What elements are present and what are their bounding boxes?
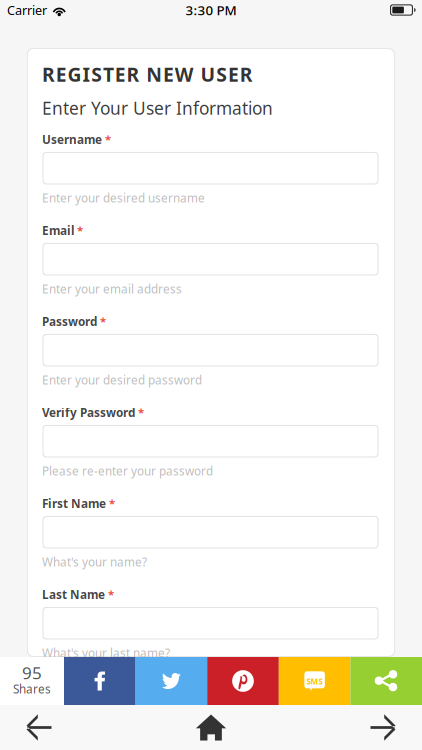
staticText: * bbox=[77, 222, 83, 238]
staticText: What's your name? bbox=[42, 554, 147, 570]
button[interactable]: More sharing options bbox=[350, 657, 422, 705]
staticText: Password bbox=[42, 313, 97, 329]
staticText: * bbox=[105, 131, 111, 147]
staticText: Verify Password bbox=[42, 404, 135, 420]
staticText: REGISTER NEW USER bbox=[42, 61, 253, 87]
button[interactable]: Forward bbox=[354, 705, 412, 750]
button[interactable]: Save to Pinterest bbox=[207, 657, 279, 705]
staticText: Last Name bbox=[42, 586, 105, 602]
staticText: * bbox=[100, 313, 106, 329]
staticText: Please re-enter your password bbox=[42, 463, 213, 479]
button[interactable]: Back bbox=[10, 705, 68, 750]
staticText: Enter your desired password bbox=[42, 372, 202, 388]
staticText: Email bbox=[42, 222, 74, 238]
staticText: Username bbox=[42, 131, 102, 147]
staticText: First Name bbox=[42, 495, 106, 511]
staticText: Enter your email address bbox=[42, 281, 182, 297]
staticText: Shares bbox=[13, 681, 51, 697]
button[interactable]: Share on Twitter bbox=[136, 657, 207, 705]
button[interactable]: Home bbox=[182, 705, 240, 750]
staticText: * bbox=[138, 404, 144, 420]
staticText: 95 bbox=[22, 661, 42, 684]
staticText: * bbox=[108, 586, 114, 602]
button[interactable]: Share via SMS bbox=[279, 657, 350, 705]
button[interactable]: Share on Facebook bbox=[64, 657, 136, 705]
staticText: Enter Your User Information bbox=[42, 96, 273, 120]
staticText: 3:30 PM bbox=[185, 1, 236, 19]
staticText: * bbox=[109, 495, 115, 511]
staticText: SMS bbox=[307, 676, 323, 687]
staticText: Enter your desired username bbox=[42, 190, 205, 206]
staticText: Carrier bbox=[7, 1, 47, 19]
staticText: What's your last name? bbox=[42, 645, 170, 661]
